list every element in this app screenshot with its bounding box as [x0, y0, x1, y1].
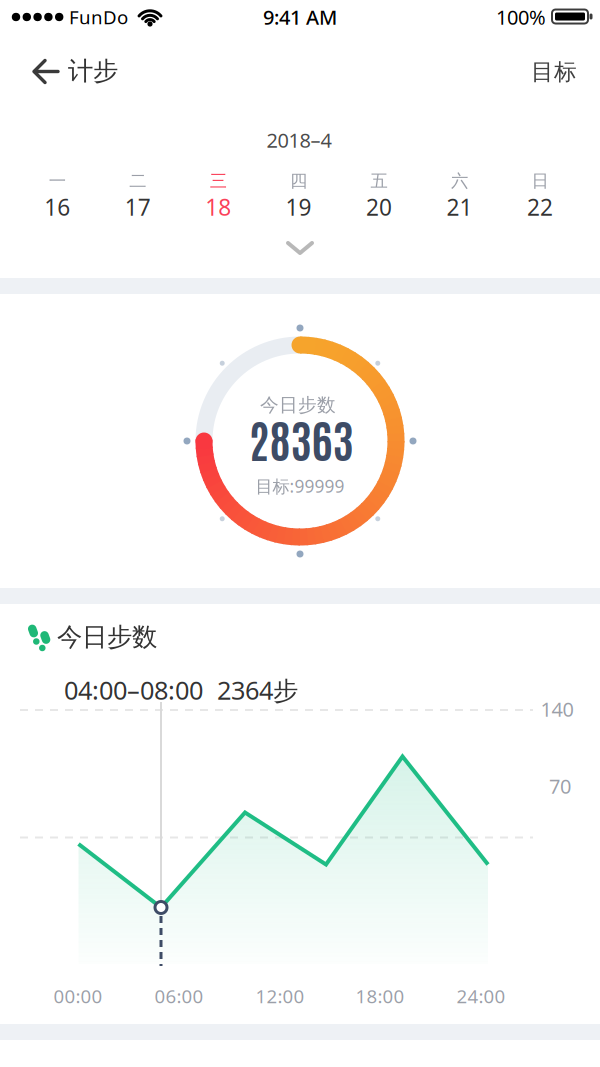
staticText: 20: [366, 192, 392, 222]
staticText: 2018–4: [266, 127, 331, 153]
staticText: 18: [205, 192, 231, 222]
staticText: 六: [451, 170, 468, 192]
staticText: 70: [549, 773, 571, 799]
button[interactable]: 目标: [519, 50, 589, 94]
button[interactable]: Expand calendar: [278, 236, 322, 260]
staticText: 100%: [496, 4, 546, 30]
staticText: 一: [49, 170, 66, 192]
button[interactable]: 日: [501, 164, 579, 228]
button[interactable]: 五: [340, 164, 418, 228]
staticText: 计步: [68, 55, 118, 86]
staticText: 22: [527, 192, 553, 222]
staticText: 今日步数: [57, 621, 157, 652]
button[interactable]: 二: [99, 164, 177, 228]
staticText: 04:00–08:00 2364步: [64, 673, 298, 707]
staticText: 19: [286, 192, 312, 222]
staticText: 日: [531, 170, 548, 192]
staticText: 四: [290, 170, 307, 192]
button[interactable]: 一: [18, 164, 96, 228]
staticText: 三: [210, 170, 227, 192]
button[interactable]: 三: [179, 164, 257, 228]
staticText: 06:00: [154, 984, 203, 1008]
staticText: 12:00: [255, 984, 304, 1008]
staticText: 五: [371, 170, 388, 192]
staticText: 目标:99999: [255, 474, 344, 497]
staticText: 00:00: [53, 984, 102, 1008]
staticText: 9:41 AM: [263, 4, 337, 30]
button[interactable]: 六: [421, 164, 499, 228]
staticText: 28363: [248, 409, 353, 467]
staticText: FunDo: [69, 5, 128, 29]
staticText: 18:00: [355, 984, 404, 1008]
staticText: 24:00: [456, 984, 505, 1008]
button[interactable]: 四: [260, 164, 338, 228]
staticText: 二: [129, 170, 146, 192]
staticText: 16: [44, 192, 70, 222]
staticText: 目标: [531, 58, 577, 86]
staticText: 今日步数: [260, 393, 336, 416]
button[interactable]: Back: [24, 49, 68, 93]
staticText: 21: [447, 192, 473, 222]
staticText: 17: [125, 192, 151, 222]
staticText: 140: [540, 696, 573, 722]
